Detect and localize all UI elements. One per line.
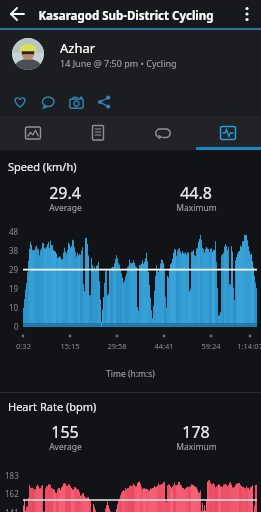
- button[interactable]: [97, 95, 111, 109]
- button[interactable]: [25, 125, 41, 141]
- staticText: 10: [9, 302, 19, 313]
- staticText: Time (h:m:s): [106, 368, 155, 380]
- staticText: 29.4: [49, 182, 81, 204]
- staticText: 0:32: [16, 341, 31, 351]
- staticText: 48: [9, 226, 19, 237]
- staticText: 44.8: [180, 182, 212, 204]
- button[interactable]: [90, 125, 106, 141]
- staticText: Speed (km/h): [8, 159, 77, 174]
- button[interactable]: [69, 95, 84, 110]
- staticText: 0: [14, 321, 19, 332]
- staticText: 44:41: [154, 341, 174, 351]
- staticText: Maximum: [176, 441, 217, 453]
- staticText: 183: [5, 470, 19, 481]
- staticText: Average: [49, 202, 82, 214]
- button[interactable]: [237, 2, 257, 26]
- staticText: 29: [9, 264, 19, 275]
- staticText: Heart Rate (bpm): [8, 399, 97, 414]
- staticText: 19: [9, 283, 19, 294]
- staticText: Average: [49, 441, 82, 453]
- staticText: 15:15: [60, 341, 80, 351]
- staticText: 162: [5, 488, 19, 499]
- staticText: 38: [9, 245, 19, 256]
- button[interactable]: [41, 95, 55, 109]
- button[interactable]: [6, 2, 30, 26]
- staticText: Kasaragod Sub-District Cycling: [38, 8, 214, 24]
- staticText: 155: [51, 421, 79, 443]
- staticText: 1:14:07: [237, 341, 261, 351]
- button[interactable]: [220, 125, 236, 141]
- staticText: 141: [5, 507, 19, 512]
- staticText: 59:24: [201, 341, 221, 351]
- staticText: 14 June @ 7:50 pm • Cycling: [60, 57, 177, 69]
- staticText: 29:58: [107, 341, 127, 351]
- button[interactable]: [12, 38, 44, 70]
- button[interactable]: [155, 125, 171, 141]
- button[interactable]: [13, 95, 27, 109]
- staticText: 178: [182, 421, 210, 443]
- staticText: Azhar: [60, 39, 96, 57]
- staticText: Maximum: [176, 202, 217, 214]
